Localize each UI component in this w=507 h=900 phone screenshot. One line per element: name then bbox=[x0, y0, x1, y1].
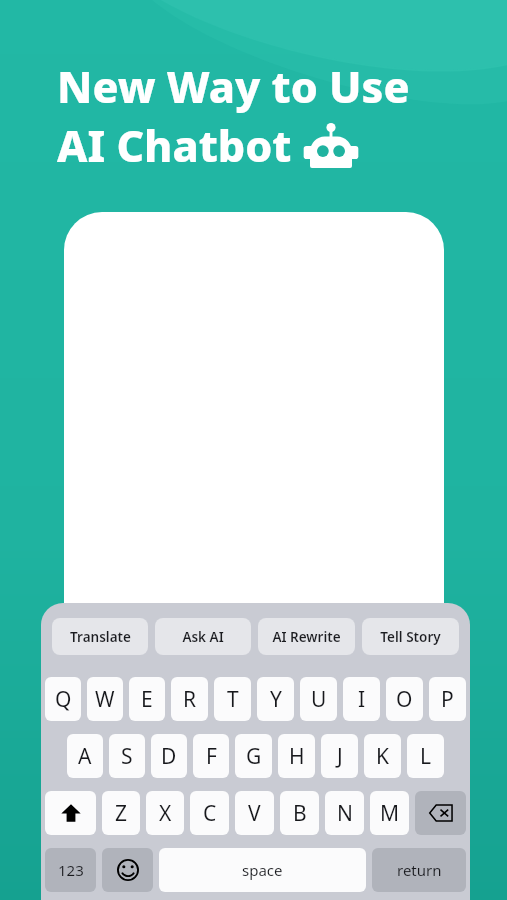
staticText: K bbox=[376, 742, 389, 771]
button[interactable]: Shift bbox=[45, 791, 96, 835]
button[interactable]: D bbox=[151, 734, 187, 778]
button[interactable]: T bbox=[214, 677, 251, 721]
button[interactable]: Z bbox=[102, 791, 140, 835]
button[interactable]: N bbox=[325, 791, 364, 835]
staticText: A bbox=[78, 742, 92, 771]
staticText: P bbox=[441, 685, 454, 714]
staticText: L bbox=[420, 742, 432, 771]
staticText: 123 bbox=[58, 860, 84, 880]
other: AI chatbot robot bbox=[303, 122, 359, 170]
button[interactable]: Emoji keyboard bbox=[102, 848, 153, 892]
button[interactable]: S bbox=[109, 734, 145, 778]
button[interactable]: A bbox=[67, 734, 103, 778]
button[interactable]: O bbox=[386, 677, 423, 721]
staticText: H bbox=[289, 742, 305, 771]
button[interactable]: E bbox=[129, 677, 165, 721]
button[interactable]: G bbox=[235, 734, 272, 778]
staticText: AI Chatbot bbox=[57, 116, 292, 175]
staticText: W bbox=[95, 685, 115, 714]
button[interactable]: B bbox=[280, 791, 319, 835]
staticText: X bbox=[159, 799, 172, 828]
button[interactable]: P bbox=[429, 677, 466, 721]
button[interactable]: K bbox=[364, 734, 401, 778]
button[interactable]: F bbox=[193, 734, 229, 778]
staticText: space bbox=[242, 860, 283, 880]
button[interactable] bbox=[64, 212, 444, 632]
button[interactable]: M bbox=[370, 791, 409, 835]
staticText: N bbox=[337, 799, 353, 828]
staticText: New Way to Use bbox=[57, 57, 410, 116]
staticText: T bbox=[227, 685, 239, 714]
button[interactable]: Q bbox=[45, 677, 81, 721]
staticText: return bbox=[397, 860, 442, 880]
staticText: Y bbox=[270, 685, 282, 714]
staticText: I bbox=[358, 685, 366, 714]
staticText: Z bbox=[115, 799, 128, 828]
button[interactable]: L bbox=[407, 734, 444, 778]
button[interactable]: Backspace bbox=[415, 791, 466, 835]
staticText: AI Rewrite bbox=[272, 628, 341, 646]
button[interactable]: 123 bbox=[45, 848, 96, 892]
button[interactable]: Translate bbox=[52, 618, 148, 655]
button[interactable]: X bbox=[146, 791, 184, 835]
button[interactable]: W bbox=[87, 677, 123, 721]
staticText: C bbox=[203, 799, 217, 828]
button[interactable]: space bbox=[159, 848, 366, 892]
staticText: M bbox=[380, 799, 400, 828]
staticText: J bbox=[337, 742, 343, 771]
staticText: F bbox=[206, 742, 217, 771]
staticText: S bbox=[121, 742, 133, 771]
button[interactable]: Ask AI bbox=[155, 618, 251, 655]
staticText: O bbox=[396, 685, 413, 714]
button[interactable]: U bbox=[300, 677, 337, 721]
staticText: G bbox=[246, 742, 262, 771]
button[interactable]: H bbox=[278, 734, 315, 778]
button[interactable]: C bbox=[190, 791, 229, 835]
staticText: U bbox=[311, 685, 327, 714]
button[interactable]: Tell Story bbox=[362, 618, 459, 655]
button[interactable]: V bbox=[235, 791, 274, 835]
staticText: E bbox=[141, 685, 153, 714]
staticText: B bbox=[293, 799, 307, 828]
staticText: Translate bbox=[70, 628, 131, 646]
staticText: D bbox=[161, 742, 177, 771]
staticText: R bbox=[183, 685, 197, 714]
button[interactable]: I bbox=[343, 677, 380, 721]
button[interactable]: J bbox=[321, 734, 358, 778]
staticText: Q bbox=[55, 685, 72, 714]
button[interactable]: Y bbox=[257, 677, 294, 721]
button[interactable]: R bbox=[171, 677, 208, 721]
staticText: Tell Story bbox=[380, 628, 441, 646]
button[interactable]: return bbox=[372, 848, 466, 892]
button[interactable]: AI Rewrite bbox=[258, 618, 355, 655]
staticText: V bbox=[248, 799, 261, 828]
staticText: Ask AI bbox=[182, 628, 224, 646]
